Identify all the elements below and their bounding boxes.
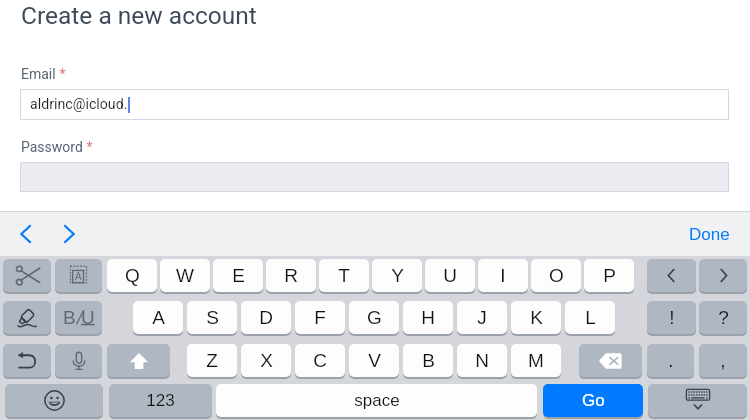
button[interactable]: V: [349, 344, 399, 377]
button[interactable]: B: [403, 344, 453, 377]
button[interactable]: W: [160, 259, 210, 292]
button[interactable]: G: [349, 301, 399, 334]
staticText: Create a new account: [21, 1, 257, 30]
button[interactable]: L: [565, 301, 615, 334]
staticText: A: [152, 307, 165, 328]
staticText: B/U: [63, 307, 95, 328]
button[interactable]: Bold italic underline: [55, 301, 102, 334]
button[interactable]: X: [241, 344, 291, 377]
button[interactable]: C: [295, 344, 345, 377]
button[interactable]: Cut: [3, 259, 51, 292]
button[interactable]: space: [216, 384, 537, 417]
staticText: V: [368, 350, 381, 371]
staticText: R: [284, 265, 298, 286]
button[interactable]: S: [187, 301, 237, 334]
staticText: I: [500, 265, 506, 286]
staticText: ,: [720, 350, 726, 371]
button[interactable]: [20, 162, 729, 192]
staticText: Go: [582, 391, 605, 410]
staticText: F: [314, 307, 326, 328]
staticText: Q: [125, 265, 140, 286]
button[interactable]: K: [511, 301, 561, 334]
button[interactable]: Shift: [107, 344, 170, 377]
staticText: A: [75, 271, 82, 282]
button[interactable]: .: [647, 344, 694, 377]
staticText: space: [354, 391, 400, 410]
staticText: Y: [391, 265, 404, 286]
button[interactable]: Q: [107, 259, 157, 292]
staticText: Password: [21, 139, 83, 155]
staticText: B: [422, 350, 435, 371]
button[interactable]: D: [241, 301, 291, 334]
button[interactable]: M: [511, 344, 561, 377]
button[interactable]: Emoji: [5, 384, 103, 417]
staticText: U: [443, 265, 457, 286]
staticText: ?: [718, 307, 729, 328]
button[interactable]: Undo: [3, 344, 51, 377]
button[interactable]: Dictate: [55, 344, 102, 377]
button[interactable]: R: [266, 259, 316, 292]
button[interactable]: F: [295, 301, 345, 334]
button[interactable]: A: [133, 301, 183, 334]
staticText: C: [313, 350, 327, 371]
staticText: Done: [689, 225, 730, 244]
button[interactable]: Done: [689, 225, 730, 244]
button[interactable]: Y: [372, 259, 422, 292]
button[interactable]: N: [457, 344, 507, 377]
button[interactable]: Hide keyboard: [648, 384, 747, 417]
staticText: 123: [146, 391, 175, 410]
button[interactable]: J: [457, 301, 507, 334]
staticText: L: [585, 307, 596, 328]
staticText: Email: [21, 66, 56, 82]
button[interactable]: Z: [187, 344, 237, 377]
button[interactable]: P: [584, 259, 634, 292]
staticText: E: [232, 265, 245, 286]
button[interactable]: Next field: [52, 217, 85, 250]
staticText: N: [475, 350, 489, 371]
staticText: D: [259, 307, 273, 328]
button[interactable]: Next: [699, 259, 747, 292]
staticText: Z: [206, 350, 218, 371]
button[interactable]: !: [647, 301, 696, 334]
button[interactable]: Highlight: [3, 301, 51, 334]
staticText: X: [260, 350, 273, 371]
staticText: T: [338, 265, 350, 286]
button[interactable]: Backspace: [579, 344, 642, 377]
button[interactable]: O: [531, 259, 581, 292]
button[interactable]: H: [403, 301, 453, 334]
staticText: !: [669, 307, 675, 328]
staticText: P: [603, 265, 616, 286]
staticText: W: [176, 265, 194, 286]
button[interactable]: 123: [109, 384, 212, 417]
staticText: G: [367, 307, 382, 328]
button[interactable]: Previous field: [9, 217, 42, 250]
staticText: H: [421, 307, 435, 328]
staticText: .: [668, 350, 674, 371]
staticText: aldrinc@icloud.: [30, 96, 128, 113]
button[interactable]: Select all: [55, 259, 102, 292]
button[interactable]: E: [213, 259, 263, 292]
button[interactable]: Go: [543, 384, 643, 417]
staticText: M: [528, 350, 544, 371]
button[interactable]: I: [478, 259, 528, 292]
staticText: S: [206, 307, 219, 328]
staticText: *: [56, 66, 66, 82]
button[interactable]: aldrinc@icloud.: [20, 89, 729, 120]
button[interactable]: T: [319, 259, 369, 292]
staticText: *: [83, 139, 93, 155]
button[interactable]: U: [425, 259, 475, 292]
staticText: J: [477, 307, 487, 328]
button[interactable]: ,: [699, 344, 747, 377]
staticText: O: [549, 265, 564, 286]
button[interactable]: Previous: [647, 259, 696, 292]
button[interactable]: ?: [699, 301, 747, 334]
staticText: K: [530, 307, 543, 328]
